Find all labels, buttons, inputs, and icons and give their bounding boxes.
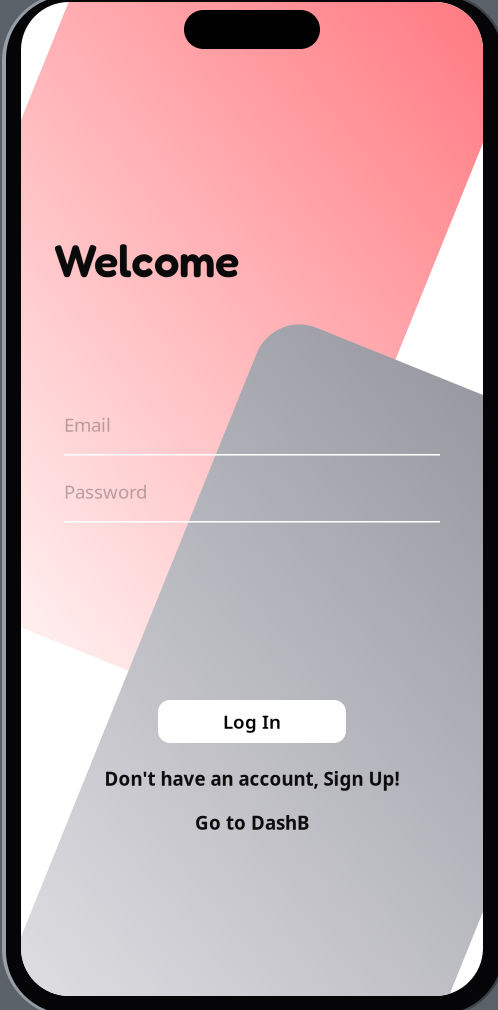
staticText: Welcome [54,233,239,288]
button[interactable]: Don't have an account, Sign Up! [21,766,483,791]
staticText: Email [64,412,111,437]
staticText: Go to DashB [195,810,309,835]
staticText: Don't have an account, Sign Up! [104,766,399,791]
staticText: Log In [223,709,281,734]
staticText: Password [64,479,147,504]
button[interactable]: Log In [158,700,346,743]
button[interactable]: Go to DashB [21,810,483,835]
